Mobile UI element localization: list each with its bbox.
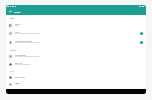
staticText: Leave a review on the store [15, 64, 31, 66]
staticText: Theme [15, 23, 21, 25]
button[interactable]: Privacy Policy [6, 73, 146, 81]
button[interactable]: Theme [6, 21, 146, 29]
button[interactable]: Navigate up [6, 8, 14, 15]
staticText: Get notified when new events are availab… [15, 33, 39, 35]
button[interactable]: Alerts [6, 29, 146, 37]
staticText: 1.0.2 [15, 84, 18, 86]
staticText: Feedback [10, 50, 16, 52]
button[interactable]: Send Feedback [6, 52, 146, 60]
staticText: General [10, 18, 15, 20]
staticText: Removes cached copies stored on this dev… [15, 42, 41, 44]
button[interactable]: Toggle Clear local files backup [138, 39, 144, 45]
staticText: Version [15, 82, 21, 84]
staticText: Clear local files backup [15, 40, 32, 42]
button[interactable]: Rate App [6, 60, 146, 68]
button[interactable]: Version [6, 80, 146, 88]
staticText: Alerts [15, 31, 20, 33]
staticText: Settings [14, 11, 21, 13]
staticText: Tell us how we can improve your experien… [15, 56, 40, 58]
staticText: About [10, 71, 14, 73]
button[interactable]: Clear local files backup [6, 38, 146, 46]
staticText: Light [15, 25, 18, 27]
staticText: Send Feedback [15, 54, 27, 56]
staticText: Rate App [15, 62, 22, 64]
button[interactable]: Toggle Alerts [138, 30, 144, 36]
staticText: Privacy Policy [15, 76, 25, 78]
